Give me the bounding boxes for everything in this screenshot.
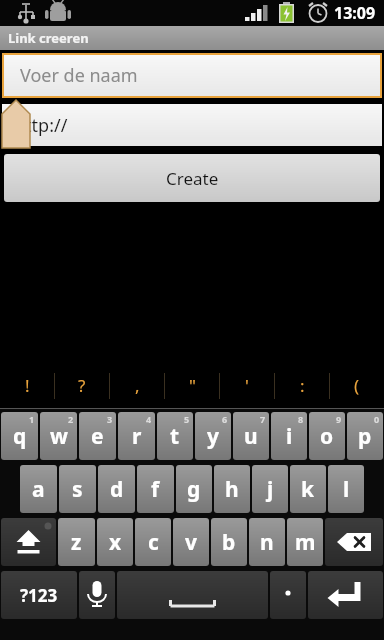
button[interactable]: Enter: [308, 571, 383, 619]
button[interactable]: e: [79, 412, 116, 460]
staticText: 2: [68, 413, 74, 425]
staticText: 13:09: [334, 2, 376, 24]
button[interactable]: b: [211, 518, 247, 566]
button[interactable]: m: [287, 518, 323, 566]
staticText: f: [151, 475, 160, 504]
button[interactable]: d: [98, 465, 135, 513]
button[interactable]: i: [271, 412, 307, 460]
staticText: Create: [166, 167, 219, 190]
button[interactable]: y: [195, 412, 231, 460]
staticText: c: [148, 528, 159, 557]
staticText: 4: [146, 413, 152, 425]
button[interactable]: t: [157, 412, 193, 460]
button[interactable]: x: [97, 518, 133, 566]
staticText: r: [132, 422, 142, 451]
staticText: 7: [260, 413, 266, 425]
staticText: ?: [78, 374, 86, 397]
staticText: Voer de naam: [20, 63, 138, 88]
staticText: t: [170, 422, 180, 451]
staticText: a: [32, 475, 45, 504]
staticText: e: [91, 422, 104, 451]
staticText: 9: [336, 413, 342, 425]
staticText: ,: [135, 374, 140, 397]
button[interactable]: c: [135, 518, 171, 566]
button[interactable]: w: [40, 412, 77, 460]
staticText: b: [222, 528, 236, 557]
staticText: 3: [107, 413, 113, 425]
button[interactable]: ?: [55, 362, 109, 409]
staticText: ': [245, 374, 249, 397]
button[interactable]: j: [252, 465, 288, 513]
button[interactable]: Backspace: [325, 518, 383, 566]
button[interactable]: :: [275, 362, 329, 409]
staticText: 6: [222, 413, 228, 425]
staticText: m: [295, 528, 316, 557]
button[interactable]: n: [249, 518, 285, 566]
button[interactable]: r: [118, 412, 155, 460]
staticText: http://: [14, 113, 68, 138]
staticText: ?123: [20, 584, 58, 607]
staticText: Link creeren: [8, 29, 89, 47]
button[interactable]: Shift: [1, 518, 56, 566]
staticText: 5: [184, 413, 190, 425]
staticText: :: [300, 374, 305, 397]
button[interactable]: v: [173, 518, 209, 566]
staticText: x: [109, 528, 122, 557]
button[interactable]: Create: [4, 154, 380, 202]
button[interactable]: (: [330, 362, 384, 409]
staticText: v: [185, 528, 197, 557]
staticText: k: [301, 475, 315, 504]
button[interactable]: http://: [2, 104, 382, 146]
staticText: !: [25, 374, 30, 397]
button[interactable]: l: [328, 465, 364, 513]
button[interactable]: Voice input: [79, 571, 115, 619]
staticText: 0: [374, 413, 380, 425]
button[interactable]: u: [233, 412, 269, 460]
button[interactable]: ": [165, 362, 219, 409]
button[interactable]: a: [20, 465, 57, 513]
staticText: q: [13, 422, 27, 451]
staticText: 8: [298, 413, 304, 425]
button[interactable]: h: [214, 465, 250, 513]
staticText: n: [260, 528, 274, 557]
button[interactable]: z: [58, 518, 95, 566]
staticText: h: [225, 475, 239, 504]
button[interactable]: !: [0, 362, 54, 409]
staticText: g: [187, 475, 201, 504]
button[interactable]: g: [176, 465, 212, 513]
staticText: j: [267, 475, 274, 504]
staticText: u: [244, 422, 258, 451]
button[interactable]: ,: [110, 362, 164, 409]
staticText: d: [110, 475, 124, 504]
staticText: ": [189, 374, 196, 397]
button[interactable]: q: [1, 412, 38, 460]
button[interactable]: ?123: [1, 571, 77, 619]
staticText: z: [71, 528, 82, 557]
staticText: y: [207, 422, 219, 451]
staticText: l: [343, 475, 350, 504]
button[interactable]: Space: [117, 571, 268, 619]
staticText: s: [72, 475, 83, 504]
button[interactable]: Voer de naam: [4, 55, 380, 96]
staticText: p: [358, 422, 372, 451]
button[interactable]: ': [220, 362, 274, 409]
button[interactable]: k: [290, 465, 326, 513]
staticText: 1: [29, 413, 35, 425]
staticText: i: [286, 422, 293, 451]
staticText: w: [50, 422, 68, 451]
staticText: (: [354, 374, 360, 397]
button[interactable]: o: [309, 412, 345, 460]
button[interactable]: f: [137, 465, 174, 513]
button[interactable]: Period: [270, 571, 306, 619]
staticText: o: [320, 422, 334, 451]
button[interactable]: p: [347, 412, 383, 460]
button[interactable]: s: [59, 465, 96, 513]
